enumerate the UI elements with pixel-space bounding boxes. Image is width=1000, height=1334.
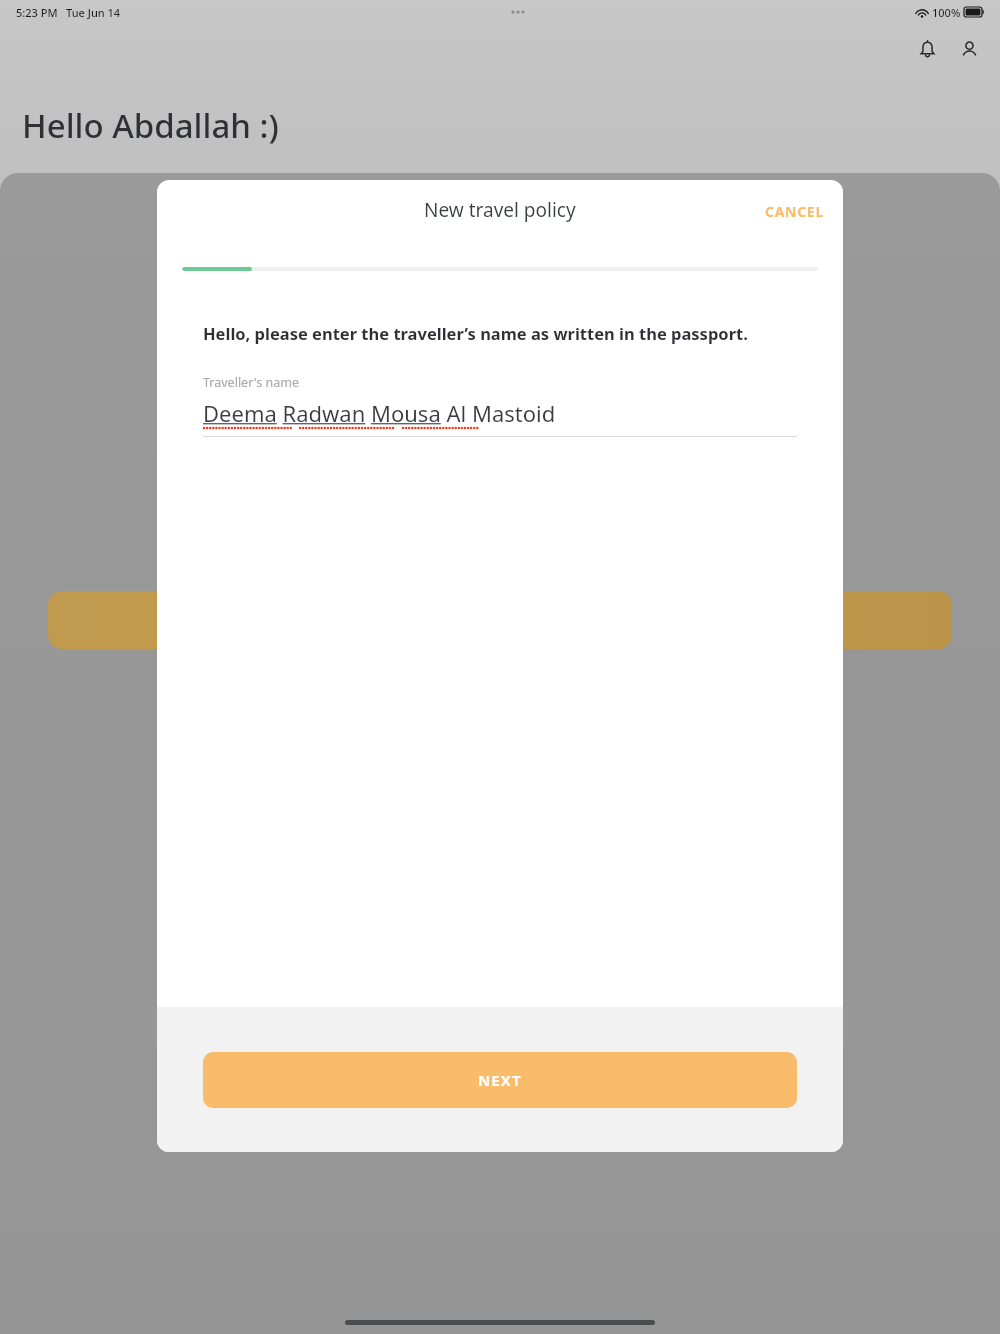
button[interactable]: Notifications: [906, 28, 948, 70]
staticText: Deema Radwan Mousa Al Mastoid: [203, 398, 556, 428]
button[interactable]: CANCEL: [746, 194, 843, 229]
staticText: Hello Abdallah :): [22, 103, 279, 148]
staticText: Tue Jun 14: [66, 5, 121, 20]
staticText: Traveller's name: [203, 374, 299, 391]
staticText: 100%: [932, 5, 961, 20]
button[interactable]: Profile: [948, 28, 990, 70]
staticText: 5:23 PM: [16, 5, 58, 20]
staticText: CANCEL: [765, 202, 824, 221]
staticText: Hello, please enter the traveller’s name…: [203, 322, 748, 344]
staticText: New travel policy: [424, 197, 576, 223]
staticText: NEXT: [478, 1070, 522, 1090]
button[interactable]: NEXT: [203, 1052, 797, 1108]
